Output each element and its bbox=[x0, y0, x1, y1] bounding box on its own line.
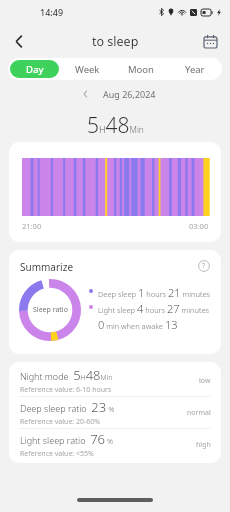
staticText: ? bbox=[202, 261, 206, 271]
staticText: Reference value: 6-10 hours bbox=[20, 385, 112, 395]
staticText: Reference value: 20-60% bbox=[20, 417, 101, 427]
staticText: Night mode 5H48Min bbox=[20, 366, 113, 384]
staticText: low bbox=[199, 376, 211, 386]
staticText: Reference value: <55% bbox=[20, 449, 94, 459]
button[interactable]: Help bbox=[195, 257, 213, 275]
button[interactable]: Week bbox=[63, 60, 112, 78]
staticText: Summarize bbox=[20, 260, 74, 274]
staticText: to sleep bbox=[92, 33, 139, 50]
staticText: 21:00 bbox=[22, 221, 42, 231]
button[interactable]: Previous day bbox=[75, 84, 95, 104]
staticText: Aug 26,2024 bbox=[103, 88, 156, 100]
staticText: Deep sleep 1 hours 21 minutes bbox=[98, 285, 211, 300]
staticText: high bbox=[196, 440, 211, 450]
button[interactable]: Light sleep ratio 76 % bbox=[9, 429, 221, 460]
button[interactable]: Night mode 5H48Min bbox=[9, 365, 221, 396]
staticText: Light sleep 4 hours 27 minutes bbox=[98, 301, 210, 316]
staticText: Week bbox=[75, 63, 100, 76]
button[interactable]: Deep sleep ratio 23 % bbox=[9, 397, 221, 428]
staticText: Light sleep ratio 76 % bbox=[20, 430, 114, 448]
staticText: 03:00 bbox=[189, 221, 209, 231]
button[interactable]: Day bbox=[10, 60, 59, 78]
button[interactable]: Year bbox=[170, 60, 220, 78]
staticText: 0 min when awake 13 bbox=[98, 317, 178, 332]
button[interactable]: Calendar bbox=[197, 28, 223, 54]
staticText: Day bbox=[26, 63, 44, 76]
button[interactable]: Back bbox=[5, 27, 33, 55]
staticText: normal bbox=[187, 408, 211, 418]
staticText: Deep sleep ratio 23 % bbox=[20, 398, 115, 416]
staticText: 5H48Min bbox=[87, 111, 144, 140]
staticText: 14:49 bbox=[40, 6, 64, 18]
staticText: Sleep ratio bbox=[33, 305, 68, 315]
staticText: Moon bbox=[128, 63, 154, 76]
staticText: Year bbox=[185, 63, 205, 76]
button[interactable]: Moon bbox=[116, 60, 166, 78]
